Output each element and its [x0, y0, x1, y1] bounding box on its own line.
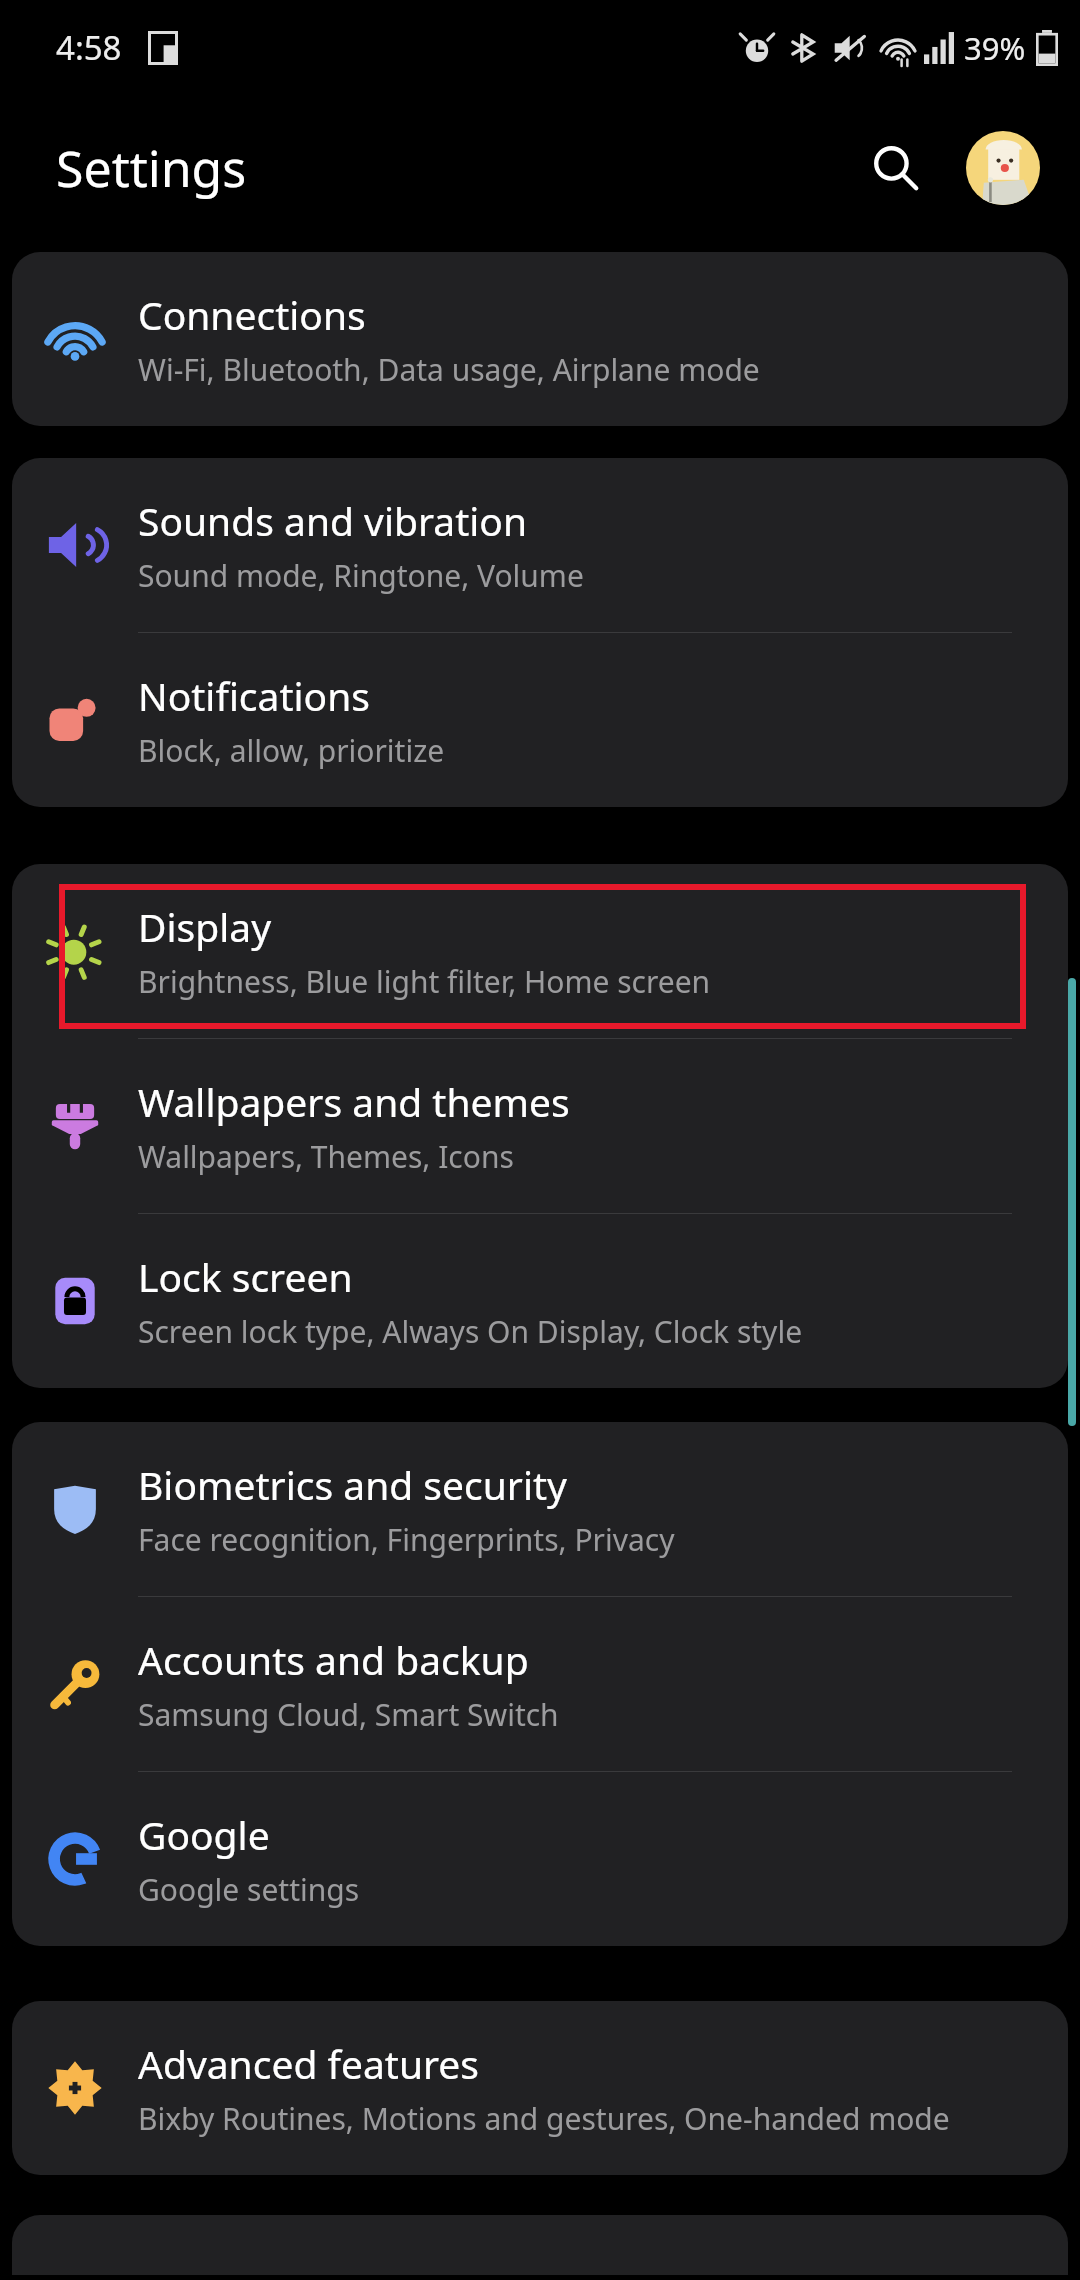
- staticText: Advanced features: [138, 2037, 480, 2090]
- staticText: 4:58: [56, 25, 122, 70]
- staticText: 39%: [964, 27, 1026, 69]
- staticText: Accounts and backup: [138, 1633, 529, 1686]
- button[interactable]: Biometrics and security: [12, 1422, 1068, 1596]
- staticText: Notifications: [138, 669, 370, 722]
- button[interactable]: Wallpapers and themes: [12, 1039, 1068, 1213]
- staticText: Google: [138, 1808, 270, 1861]
- button[interactable]: Google: [12, 1772, 1068, 1946]
- button[interactable]: Display: [12, 864, 1068, 1038]
- staticText: Connections: [138, 288, 366, 341]
- button[interactable]: Search: [854, 126, 938, 210]
- staticText: Lock screen: [138, 1250, 353, 1303]
- button[interactable]: Sounds and vibration: [12, 458, 1068, 632]
- staticText: Wi-Fi, Bluetooth, Data usage, Airplane m…: [138, 349, 760, 390]
- button[interactable]: Lock screen: [12, 1214, 1068, 1388]
- staticText: Settings: [56, 134, 247, 202]
- button[interactable]: Accounts and backup: [12, 1597, 1068, 1771]
- staticText: Biometrics and security: [138, 1458, 568, 1511]
- staticText: Display: [138, 900, 272, 953]
- staticText: Bixby Routines, Motions and gestures, On…: [138, 2098, 950, 2139]
- button[interactable]: Account profile: [966, 131, 1040, 205]
- button[interactable]: Notifications: [12, 633, 1068, 807]
- staticText: Samsung Cloud, Smart Switch: [138, 1694, 559, 1735]
- staticText: Wallpapers, Themes, Icons: [138, 1136, 514, 1177]
- button[interactable]: Advanced features: [12, 2001, 1068, 2175]
- staticText: Sound mode, Ringtone, Volume: [138, 555, 584, 596]
- button[interactable]: Connections: [12, 252, 1068, 426]
- staticText: Screen lock type, Always On Display, Clo…: [138, 1311, 803, 1352]
- staticText: Wallpapers and themes: [138, 1075, 570, 1128]
- staticText: Block, allow, prioritize: [138, 730, 445, 771]
- staticText: Brightness, Blue light filter, Home scre…: [138, 961, 711, 1002]
- staticText: Google settings: [138, 1869, 360, 1910]
- staticText: Face recognition, Fingerprints, Privacy: [138, 1519, 675, 1560]
- staticText: Sounds and vibration: [138, 494, 528, 547]
